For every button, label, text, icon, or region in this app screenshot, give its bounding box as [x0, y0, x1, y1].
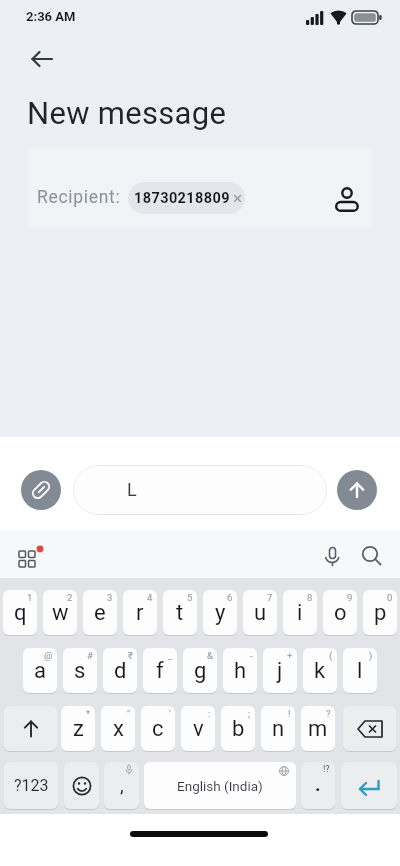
button[interactable]: m — [301, 706, 335, 751]
staticText: h — [234, 658, 247, 684]
button[interactable]: c — [141, 706, 175, 751]
button[interactable]: b — [221, 706, 255, 751]
button[interactable]: x — [101, 706, 135, 751]
button[interactable]: j — [263, 648, 297, 693]
button[interactable]: ?123 — [4, 762, 58, 809]
button[interactable]: z — [61, 706, 95, 751]
staticText: d — [114, 658, 127, 684]
button[interactable]: i — [283, 590, 317, 635]
button[interactable]: English (India) — [144, 762, 296, 809]
button[interactable]: d — [103, 648, 137, 693]
staticText: j — [277, 658, 283, 684]
staticText: c — [152, 716, 164, 742]
button[interactable] — [4, 706, 57, 751]
button[interactable] — [330, 183, 362, 215]
staticText: + — [287, 650, 293, 661]
staticText: 6 — [227, 592, 233, 603]
button[interactable]: y — [203, 590, 237, 635]
button[interactable]: l — [343, 648, 377, 693]
staticText: L — [127, 479, 137, 500]
button[interactable]: . — [301, 762, 335, 809]
staticText: v — [193, 716, 204, 742]
button[interactable]: q — [3, 590, 37, 635]
staticText: q — [14, 600, 27, 626]
button[interactable] — [337, 470, 377, 510]
staticText: z — [73, 716, 84, 742]
button[interactable]: u — [243, 590, 277, 635]
staticText: ' — [169, 708, 171, 719]
staticText: 18730218809 — [134, 190, 230, 207]
staticText: - — [250, 650, 253, 661]
button[interactable]: r — [123, 590, 157, 635]
button[interactable] — [316, 542, 348, 572]
staticText: w — [52, 600, 69, 626]
staticText: 3 — [107, 592, 113, 603]
staticText: y — [215, 600, 226, 626]
staticText: English (India) — [177, 778, 263, 794]
staticText: 9 — [347, 592, 353, 603]
staticText: @ — [44, 650, 53, 661]
staticText: f — [156, 658, 164, 684]
button[interactable] — [21, 470, 61, 510]
staticText: r — [136, 600, 144, 626]
button[interactable]: w — [43, 590, 77, 635]
staticText: # — [87, 650, 93, 661]
staticText: " — [127, 708, 131, 719]
staticText: & — [207, 650, 213, 661]
button[interactable] — [343, 706, 396, 751]
button[interactable] — [64, 762, 99, 809]
staticText: b — [232, 716, 245, 742]
staticText: s — [74, 658, 86, 684]
staticText: 5 — [187, 592, 193, 603]
staticText: 8 — [307, 592, 313, 603]
button[interactable]: h — [223, 648, 257, 693]
staticText: 2:36 AM — [26, 9, 76, 24]
button[interactable] — [22, 44, 62, 74]
staticText: g — [194, 658, 207, 684]
staticText: i — [297, 600, 303, 626]
staticText: n — [272, 716, 285, 742]
staticText: * — [86, 708, 91, 719]
button[interactable]: s — [63, 648, 97, 693]
staticText: ) — [369, 650, 373, 661]
staticText: l — [357, 658, 363, 684]
staticText: p — [374, 600, 387, 626]
staticText: , — [120, 774, 124, 796]
staticText: m — [308, 716, 328, 742]
staticText: ! — [288, 708, 291, 719]
staticText: a — [34, 658, 46, 684]
staticText: 0 — [387, 592, 393, 603]
staticText: x — [113, 716, 124, 742]
button[interactable]: g — [183, 648, 217, 693]
button[interactable]: a — [23, 648, 57, 693]
staticText: u — [254, 600, 267, 626]
staticText: !? — [323, 764, 330, 775]
staticText: ₹ — [128, 650, 133, 661]
button[interactable]: f — [143, 648, 177, 693]
button[interactable] — [341, 762, 397, 809]
staticText: o — [334, 600, 347, 626]
staticText: ? — [326, 708, 331, 719]
button[interactable]: t — [163, 590, 197, 635]
button[interactable]: v — [181, 706, 215, 751]
button[interactable]: , — [104, 762, 139, 809]
staticText: t — [176, 600, 184, 626]
staticText: 2 — [67, 592, 73, 603]
button[interactable]: k — [303, 648, 337, 693]
button[interactable]: 18730218809 — [128, 182, 245, 214]
staticText: e — [94, 600, 106, 626]
staticText: 7 — [267, 592, 273, 603]
staticText: ?123 — [14, 776, 49, 795]
staticText: ( — [329, 650, 333, 661]
button[interactable]: n — [261, 706, 295, 751]
staticText: Recipient: — [37, 187, 121, 208]
button[interactable]: e — [83, 590, 117, 635]
button[interactable] — [354, 540, 388, 570]
button[interactable]: o — [323, 590, 357, 635]
button[interactable] — [13, 540, 47, 572]
staticText: : — [208, 708, 211, 719]
staticText: 4 — [147, 592, 153, 603]
button[interactable]: L — [73, 465, 327, 515]
staticText: . — [315, 773, 321, 795]
button[interactable]: p — [363, 590, 397, 635]
